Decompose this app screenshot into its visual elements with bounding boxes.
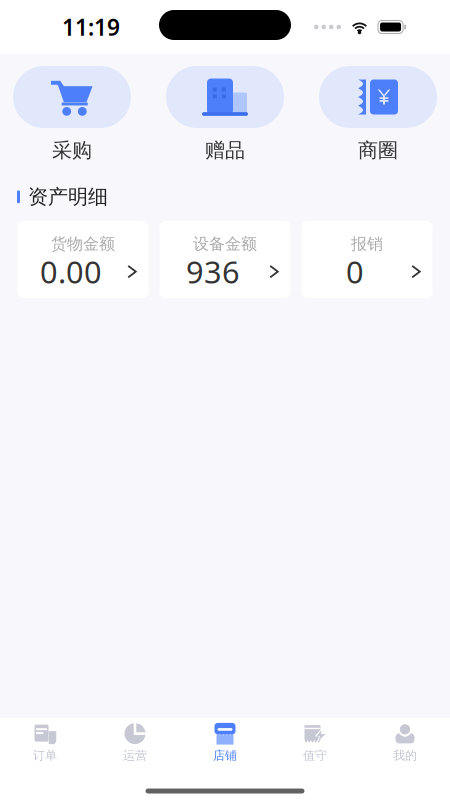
staticText: 0 xyxy=(346,251,364,292)
staticText: 运营 xyxy=(123,748,147,763)
button[interactable]: 店铺 xyxy=(180,715,270,769)
button[interactable]: 设备金额 xyxy=(159,221,290,298)
staticText: 资产明细 xyxy=(28,185,108,209)
button[interactable]: 商圈 xyxy=(319,66,437,163)
button[interactable]: 货物金额 xyxy=(17,221,148,298)
staticText: 我的 xyxy=(393,748,417,763)
button[interactable]: 运营 xyxy=(90,715,180,769)
staticText: 11:19 xyxy=(62,12,120,42)
button[interactable]: 值守 xyxy=(270,715,360,769)
staticText: 0.00 xyxy=(40,251,102,292)
staticText: 报销 xyxy=(351,234,383,254)
staticText: 设备金额 xyxy=(193,234,257,254)
staticText: 货物金额 xyxy=(51,234,115,254)
staticText: 采购 xyxy=(52,138,92,163)
button[interactable]: 赠品 xyxy=(166,66,284,163)
staticText: 商圈 xyxy=(358,138,398,163)
button[interactable]: 采购 xyxy=(13,66,131,163)
staticText: 936 xyxy=(186,251,240,292)
staticText: 订单 xyxy=(33,748,57,763)
button[interactable]: 报销 xyxy=(301,221,432,298)
staticText: 店铺 xyxy=(213,748,237,763)
staticText: 值守 xyxy=(303,748,327,763)
staticText: 赠品 xyxy=(205,138,245,163)
button[interactable]: 订单 xyxy=(0,715,90,769)
button[interactable]: 我的 xyxy=(360,715,450,769)
